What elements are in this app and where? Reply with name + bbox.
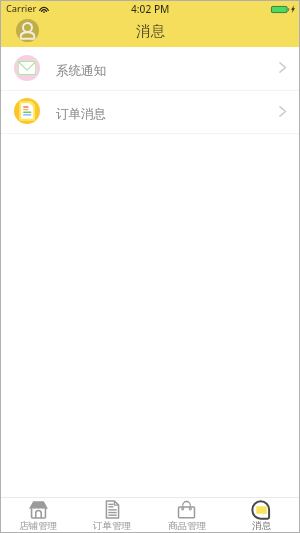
button[interactable]: Profile bbox=[16, 19, 39, 42]
button[interactable]: 系统通知 bbox=[1, 47, 299, 90]
button[interactable]: 店铺管理 bbox=[1, 497, 75, 532]
button[interactable]: 订单管理 bbox=[75, 497, 149, 532]
staticText: 消息 bbox=[252, 520, 271, 532]
staticText: 系统通知 bbox=[56, 63, 106, 79]
staticText: 商品管理 bbox=[168, 520, 206, 532]
staticText: 店铺管理 bbox=[19, 520, 57, 532]
staticText: 订单消息 bbox=[56, 106, 106, 122]
button[interactable]: 消息 bbox=[224, 497, 299, 532]
button[interactable]: 订单消息 bbox=[1, 91, 299, 133]
staticText: 4:02 PM bbox=[131, 2, 170, 16]
staticText: 订单管理 bbox=[93, 520, 131, 532]
staticText: Carrier bbox=[6, 2, 37, 15]
button[interactable]: 商品管理 bbox=[149, 497, 224, 532]
staticText: 消息 bbox=[136, 22, 165, 40]
